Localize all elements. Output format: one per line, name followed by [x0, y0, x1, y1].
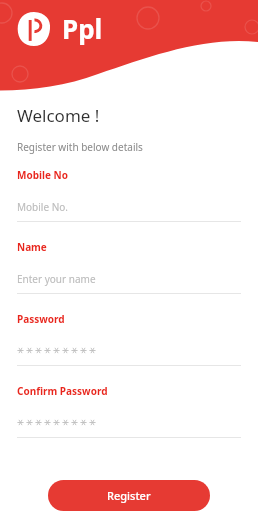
button[interactable]: Mobile No. — [17, 199, 241, 214]
button[interactable] — [17, 343, 241, 358]
button[interactable]: Register — [48, 480, 210, 511]
staticText: Confirm Password — [17, 384, 108, 398]
staticText: Register — [107, 488, 151, 503]
staticText: Name — [17, 240, 47, 254]
staticText: Mobile No — [17, 168, 68, 182]
button[interactable]: Enter your name — [17, 271, 241, 286]
staticText: Ppl — [62, 11, 103, 46]
button[interactable] — [17, 415, 241, 430]
staticText: Password — [17, 312, 65, 326]
staticText: Mobile No. — [17, 200, 68, 214]
staticText: Enter your name — [17, 272, 96, 286]
staticText: Register with below details — [17, 140, 143, 154]
staticText: Welcome ! — [17, 104, 100, 127]
